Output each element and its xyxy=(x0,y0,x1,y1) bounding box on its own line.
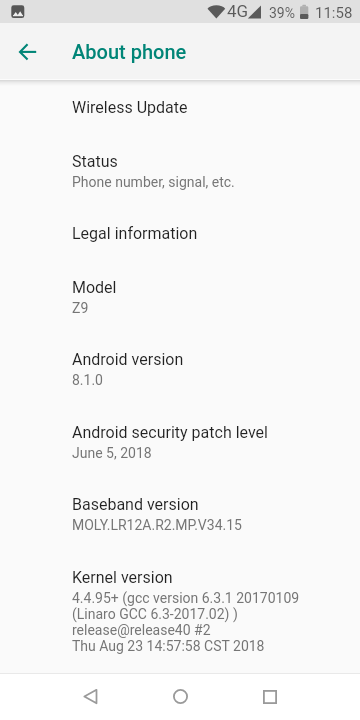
staticText: Legal information xyxy=(72,224,198,243)
staticText: Kernel version xyxy=(72,568,173,587)
button[interactable]: Legal information xyxy=(0,210,360,249)
staticText: 8.1.0 xyxy=(72,372,103,388)
staticText: June 5, 2018 xyxy=(72,445,152,461)
staticText: Baseband version xyxy=(72,495,199,514)
staticText: Status xyxy=(72,152,118,171)
button[interactable]: Android security patch level xyxy=(0,409,360,467)
staticText: Android security patch level xyxy=(72,423,268,442)
staticText: Z9 xyxy=(72,300,89,316)
staticText: Android version xyxy=(72,350,184,369)
staticText: MOLY.LR12A.R2.MP.V34.15 xyxy=(72,517,242,533)
button[interactable]: Back xyxy=(62,673,118,720)
staticText: 11:58 xyxy=(315,4,353,22)
staticText: About phone xyxy=(72,40,187,63)
button[interactable]: Model xyxy=(0,264,360,322)
staticText: 4.4.95+ (gcc version 6.3.1 20170109 (Lin… xyxy=(72,590,300,654)
staticText: 4G xyxy=(227,1,249,21)
button[interactable]: Baseband version xyxy=(0,481,360,539)
staticText: Phone number, signal, etc. xyxy=(72,174,235,190)
button[interactable]: Home xyxy=(152,673,208,720)
button[interactable]: Android version xyxy=(0,336,360,394)
button[interactable]: Navigate up xyxy=(4,28,52,76)
button[interactable]: Wireless Update xyxy=(0,84,360,123)
button[interactable]: Recent apps xyxy=(242,673,298,720)
staticText: Wireless Update xyxy=(72,98,188,117)
button[interactable]: Kernel version xyxy=(0,554,360,660)
staticText: Model xyxy=(72,278,117,297)
staticText: 39% xyxy=(269,5,295,21)
button[interactable]: Status xyxy=(0,138,360,196)
